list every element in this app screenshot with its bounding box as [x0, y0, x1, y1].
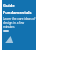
staticText: Guide: [3, 3, 15, 8]
button[interactable]: [3, 30, 9, 32]
staticText: Learn the core ideas of: [3, 17, 36, 21]
staticText: Fundamentals: [3, 10, 32, 15]
staticText: design in a few minutes: [3, 21, 36, 29]
